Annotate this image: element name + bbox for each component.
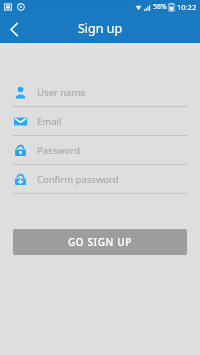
button[interactable]: Back <box>0 15 28 43</box>
button[interactable]: GO SIGN UP <box>13 229 187 255</box>
button[interactable]: Password <box>0 136 200 164</box>
staticText: Sign up <box>78 20 123 37</box>
button[interactable]: Confirm password <box>0 165 200 193</box>
staticText: 10:22 <box>177 2 197 12</box>
button[interactable]: Email <box>0 107 200 135</box>
staticText: Confirm password <box>37 173 119 186</box>
staticText: GO SIGN UP <box>68 235 132 249</box>
staticText: 58% <box>153 2 167 12</box>
staticText: Email <box>37 115 62 128</box>
staticText: User name <box>37 86 86 99</box>
staticText: Password <box>37 144 80 157</box>
button[interactable]: User name <box>0 78 200 106</box>
